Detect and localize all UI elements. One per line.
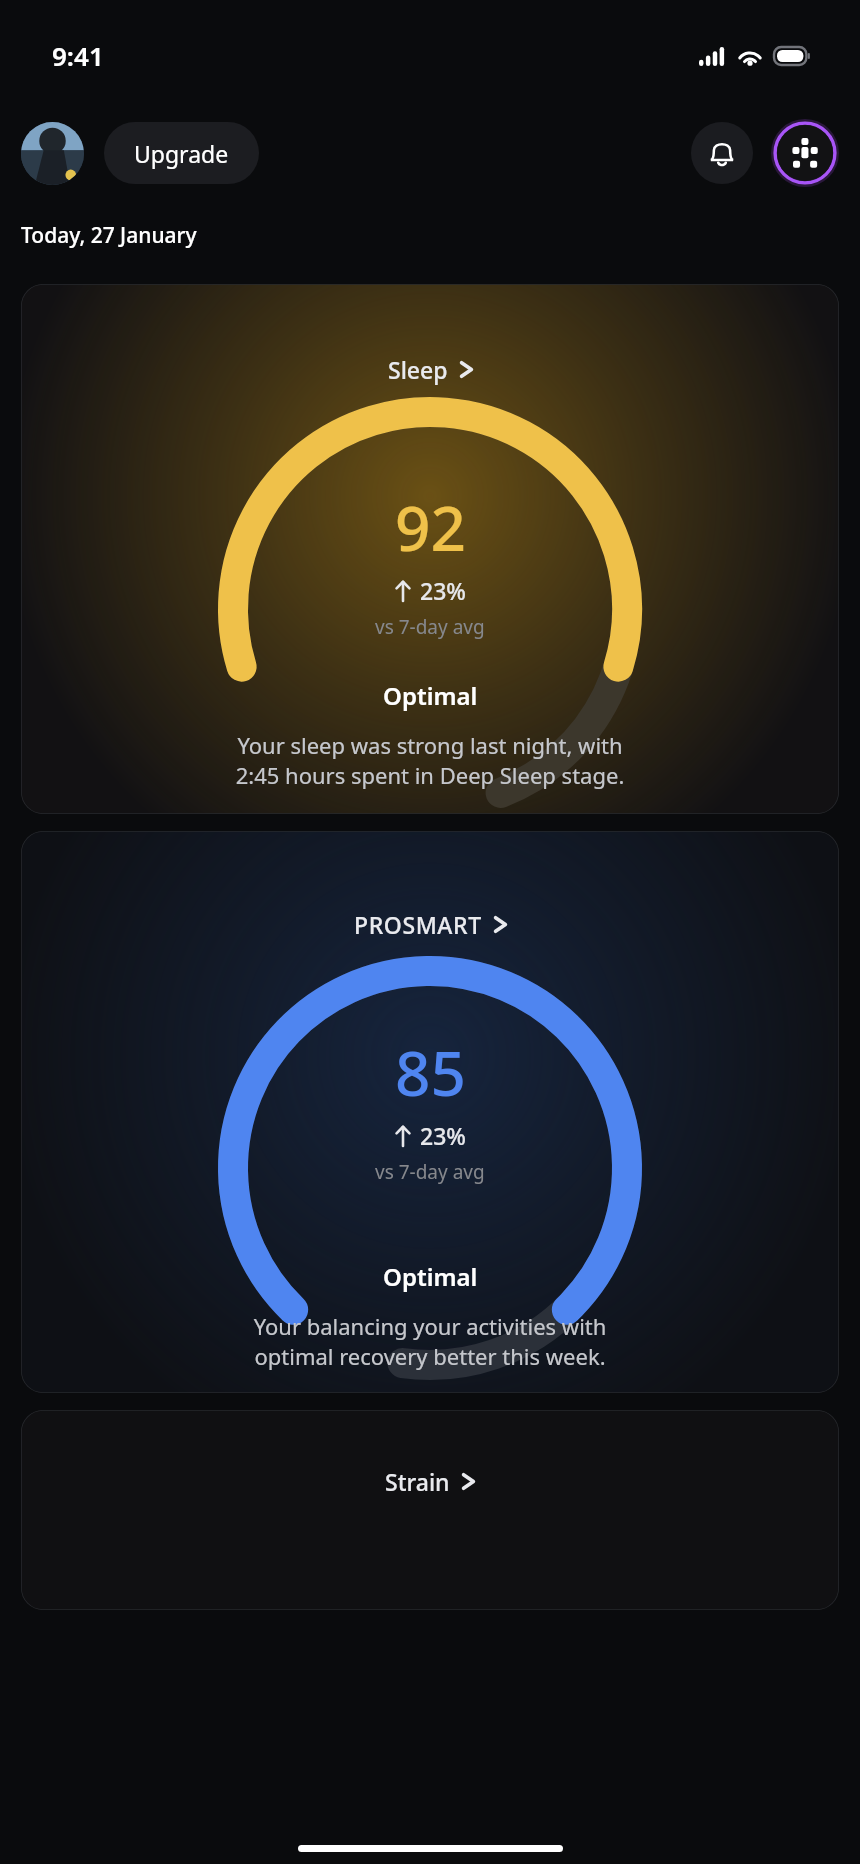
staticText: Upgrade <box>134 138 229 169</box>
staticText: 23% <box>420 1120 466 1151</box>
button[interactable]: Workspace <box>777 125 833 181</box>
button[interactable]: PROSMART <box>21 831 839 1393</box>
staticText: 92 <box>395 485 466 569</box>
button[interactable]: Notifications <box>691 122 753 184</box>
staticText: vs 7-day avg <box>375 1159 485 1185</box>
button[interactable]: Strain <box>21 1410 839 1610</box>
staticText: 23% <box>420 575 466 606</box>
staticText: 2:45 hours spent in Deep Sleep stage. <box>21 760 839 790</box>
staticText: Your balancing your activities with <box>21 1311 839 1341</box>
button[interactable]: Upgrade <box>104 122 259 184</box>
staticText: optimal recovery better this week. <box>21 1341 839 1371</box>
staticText: Optimal <box>383 679 478 712</box>
staticText: Strain <box>385 1466 450 1497</box>
button[interactable]: Sleep <box>21 284 839 814</box>
staticText: Optimal <box>383 1260 478 1293</box>
staticText: vs 7-day avg <box>375 614 485 640</box>
button[interactable]: Sleep <box>380 350 481 389</box>
button[interactable]: Profile <box>21 122 84 185</box>
staticText: Today, 27 January <box>21 221 197 250</box>
staticText: PROSMART <box>354 909 482 940</box>
staticText: Your sleep was strong last night, with <box>21 730 839 760</box>
button[interactable]: PROSMART <box>346 905 515 944</box>
staticText: 85 <box>395 1030 466 1114</box>
staticText: 9:41 <box>52 38 104 73</box>
staticText: Sleep <box>388 354 448 385</box>
